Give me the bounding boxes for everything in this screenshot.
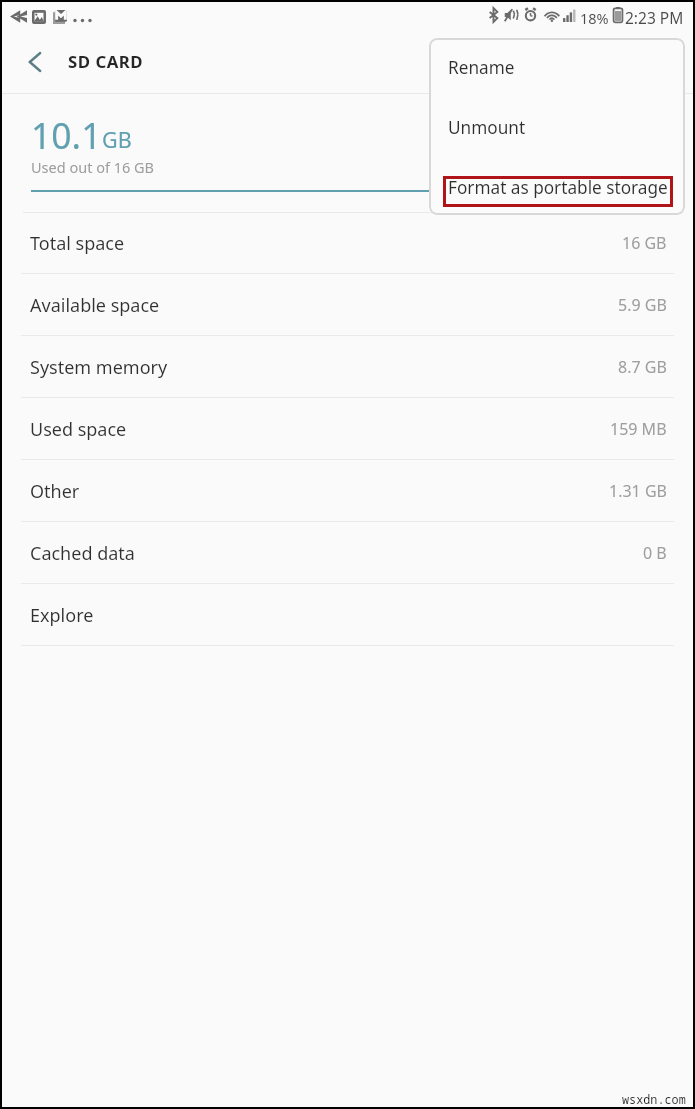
button[interactable]: Other: [2, 460, 693, 522]
staticText: SD CARD: [68, 50, 144, 73]
staticText: 8.7 GB: [618, 356, 667, 378]
staticText: 159 MB: [610, 418, 667, 440]
staticText: 0 B: [643, 542, 667, 564]
staticText: Used space: [30, 417, 127, 442]
button[interactable]: Rename: [429, 45, 685, 89]
button[interactable]: Format as portable storage: [429, 165, 685, 209]
staticText: 18%: [580, 8, 609, 28]
staticText: Format as portable storage: [448, 176, 668, 199]
staticText: 1.31 GB: [609, 480, 667, 502]
staticText: Other: [30, 479, 80, 504]
staticText: 16 GB: [622, 232, 667, 254]
staticText: wsxdn.com: [622, 1091, 686, 1107]
staticText: GB: [102, 125, 132, 154]
staticText: Explore: [30, 603, 94, 628]
staticText: System memory: [30, 355, 168, 380]
button[interactable]: Available space: [2, 274, 693, 336]
button[interactable]: Unmount: [429, 105, 685, 149]
button[interactable]: Used space: [2, 398, 693, 460]
staticText: Cached data: [30, 541, 135, 566]
staticText: 10.1: [31, 111, 102, 159]
button[interactable]: Back: [16, 43, 54, 81]
staticText: Rename: [448, 56, 515, 79]
button[interactable]: Total space: [2, 212, 693, 274]
button[interactable]: Explore: [2, 584, 693, 646]
staticText: Used out of 16 GB: [31, 157, 155, 177]
staticText: 5.9 GB: [618, 294, 667, 316]
staticText: 2:23 PM: [625, 7, 684, 28]
staticText: Unmount: [448, 116, 526, 139]
button[interactable]: System memory: [2, 336, 693, 398]
staticText: Available space: [30, 293, 160, 318]
staticText: Total space: [30, 231, 125, 256]
button[interactable]: Cached data: [2, 522, 693, 584]
